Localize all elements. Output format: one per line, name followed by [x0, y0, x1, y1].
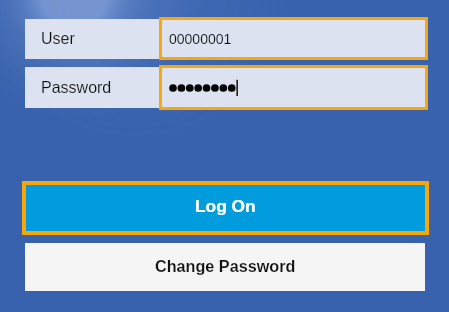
- button[interactable]: Password: [25, 67, 159, 108]
- button[interactable]: Password input field: [159, 65, 428, 110]
- staticText: Log On: [195, 196, 256, 215]
- staticText: Change Password: [155, 257, 296, 275]
- button[interactable]: Change Password: [25, 243, 425, 291]
- staticText: Password: [41, 79, 112, 97]
- button[interactable]: User: [25, 19, 159, 59]
- button[interactable]: Log On: [22, 181, 429, 235]
- button[interactable]: User input field: [159, 17, 428, 60]
- staticText: User: [41, 30, 75, 48]
- staticText: 00000001: [169, 31, 232, 47]
